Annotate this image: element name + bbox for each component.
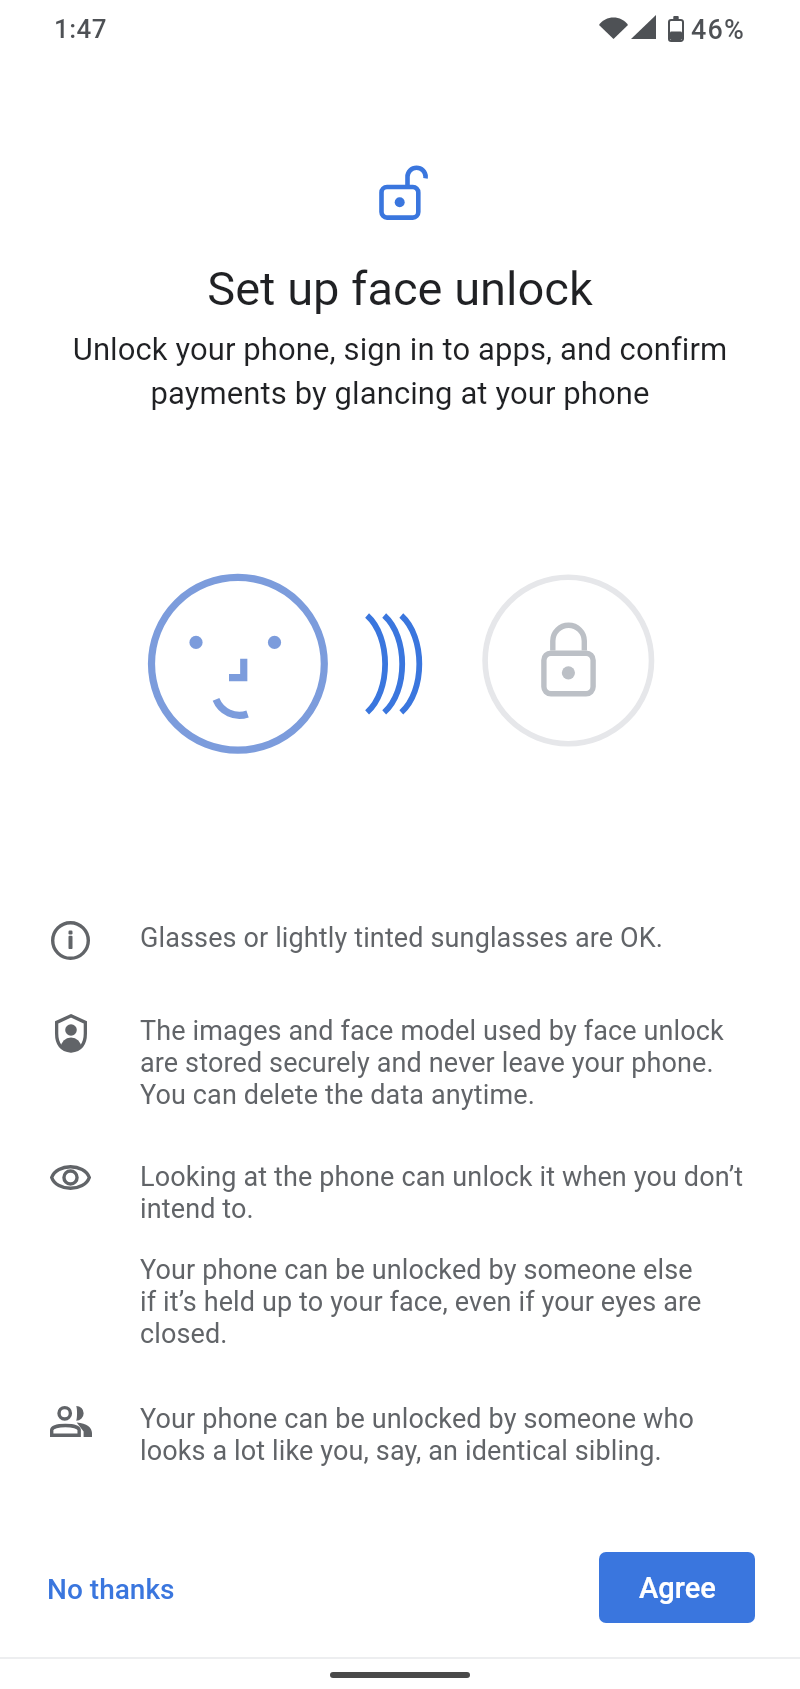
staticText: Glasses or lightly tinted sunglasses are… bbox=[140, 922, 664, 954]
staticText: The images and face model used by face u… bbox=[140, 1015, 724, 1111]
staticText: 46% bbox=[691, 14, 746, 46]
staticText: Your phone can be unlocked by someone wh… bbox=[140, 1403, 695, 1467]
staticText: Unlock your phone, sign in to apps, and … bbox=[60, 331, 740, 411]
staticText: Set up face unlock bbox=[0, 261, 800, 316]
button[interactable]: Agree bbox=[599, 1552, 755, 1623]
staticText: Agree bbox=[639, 1571, 716, 1605]
staticText: 1:47 bbox=[54, 14, 107, 44]
button[interactable]: No thanks bbox=[30, 1554, 192, 1625]
staticText: Looking at the phone can unlock it when … bbox=[140, 1161, 744, 1225]
staticText: No thanks bbox=[47, 1573, 175, 1606]
staticText: Your phone can be unlocked by someone el… bbox=[140, 1254, 702, 1350]
